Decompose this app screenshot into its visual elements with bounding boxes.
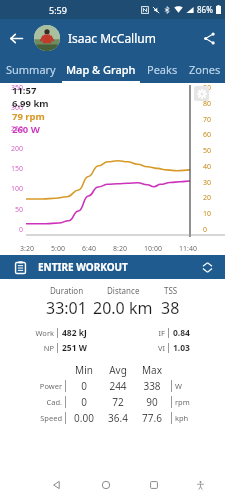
staticText: Speed (30, 413, 62, 423)
staticText: Summary (6, 62, 56, 77)
staticText: NP (34, 343, 54, 353)
staticText: 0 (67, 395, 101, 409)
staticText: 0.00 (67, 411, 101, 425)
staticText: 5:00 (51, 244, 65, 254)
staticText: 30 (203, 178, 212, 188)
staticText: 0 (203, 225, 208, 235)
button[interactable]: Accessibility (187, 472, 213, 498)
staticText: 86% (197, 4, 213, 15)
staticText: 6:40 (82, 244, 96, 254)
button[interactable]: Recent apps (139, 470, 169, 500)
staticText: TSS (164, 285, 178, 296)
staticText: 10 (203, 209, 212, 219)
staticText: 300 (11, 103, 24, 113)
button[interactable]: Chart settings (194, 86, 209, 101)
staticText: 3:20 (20, 244, 34, 254)
staticText: 80 (203, 99, 212, 109)
staticText: Peaks (147, 62, 178, 77)
staticText: Min (67, 363, 101, 377)
staticText: rpm (175, 397, 190, 407)
button[interactable]: Peaks (140, 56, 184, 83)
staticText: 200 (11, 144, 24, 154)
staticText: 20 (203, 193, 212, 203)
staticText: Distance (107, 285, 140, 296)
staticText: Zones (189, 62, 221, 77)
button[interactable]: Summary (0, 56, 62, 83)
staticText: 260 W (12, 123, 40, 136)
staticText: Avg (101, 363, 135, 377)
staticText: 36.4 (101, 411, 135, 425)
staticText: Isaac McCallum (68, 30, 193, 46)
button[interactable]: Map & Graph (62, 56, 140, 83)
staticText: 60 (203, 130, 212, 140)
staticText: 40 (203, 162, 212, 172)
button[interactable]: Expand (195, 255, 219, 279)
staticText: 90 (203, 83, 212, 93)
staticText: 70 (203, 115, 212, 125)
staticText: 11:40 (179, 244, 197, 254)
button[interactable]: Profile photo (34, 25, 60, 51)
staticText: 0 (19, 225, 24, 235)
staticText: 251 W (62, 342, 96, 354)
staticText: 20.0 km (93, 297, 153, 319)
staticText: 10:00 (144, 244, 162, 254)
staticText: W (175, 381, 182, 391)
staticText: 1.03 (173, 342, 207, 354)
staticText: 79 rpm (12, 110, 45, 123)
staticText: 8:20 (113, 244, 127, 254)
staticText: Duration (50, 285, 84, 296)
staticText: 90 (135, 395, 169, 409)
staticText: ENTIRE WORKOUT (38, 260, 128, 274)
staticText: 338 (135, 379, 169, 393)
staticText: 482 kJ (62, 327, 96, 339)
button[interactable]: Home (91, 470, 121, 500)
button[interactable]: Share (193, 22, 225, 54)
staticText: Map & Graph (66, 62, 136, 77)
staticText: 0 (67, 379, 101, 393)
staticText: Power (30, 381, 62, 391)
staticText: 38 (161, 297, 180, 319)
staticText: 11:57 (12, 84, 37, 97)
staticText: 50 (15, 205, 24, 215)
staticText: 72 (101, 395, 135, 409)
staticText: 100 (11, 184, 24, 194)
staticText: 244 (101, 379, 135, 393)
staticText: 77.6 (135, 411, 169, 425)
button[interactable]: Back (42, 470, 72, 500)
staticText: Max (135, 363, 169, 377)
staticText: Cad. (30, 397, 62, 407)
button[interactable]: Zones (184, 56, 225, 83)
staticText: Work (34, 328, 54, 338)
staticText: 50 (203, 146, 212, 156)
staticText: 150 (11, 164, 24, 174)
staticText: 5:59 (49, 4, 67, 16)
staticText: 350 (11, 83, 24, 93)
staticText: 250 (11, 124, 24, 134)
staticText: 6.99 km (12, 97, 49, 110)
button[interactable]: ENTIRE WORKOUT (0, 255, 225, 279)
staticText: VI (145, 343, 165, 353)
button[interactable]: Back (0, 22, 32, 54)
staticText: 0.84 (173, 327, 207, 339)
staticText: kph (175, 413, 189, 423)
staticText: IF (145, 328, 165, 338)
staticText: 33:01 (46, 297, 87, 319)
